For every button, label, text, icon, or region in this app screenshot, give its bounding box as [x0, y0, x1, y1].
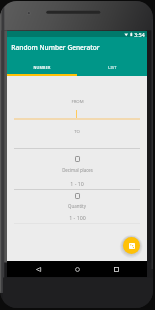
staticText: 3:54: [134, 31, 145, 38]
staticText: FROM: [71, 98, 84, 104]
button[interactable]: Recent apps: [108, 261, 124, 277]
button[interactable]: Back: [30, 261, 46, 277]
staticText: Random Number Generator: [11, 43, 100, 52]
staticText: Quantity: [68, 203, 86, 209]
button[interactable]: Random Number Generator: [7, 41, 147, 53]
staticText: 1 - 100: [69, 214, 86, 221]
button[interactable]: Generate random number: [123, 237, 140, 254]
staticText: 1 - 10: [70, 180, 84, 187]
button[interactable]: LIST: [77, 61, 147, 74]
button[interactable]: NUMBER: [7, 61, 77, 74]
staticText: NUMBER: [33, 65, 51, 70]
staticText: LIST: [108, 65, 117, 70]
button[interactable]: Home: [69, 261, 85, 277]
staticText: TO: [74, 128, 80, 134]
staticText: Decimal places: [62, 167, 93, 173]
